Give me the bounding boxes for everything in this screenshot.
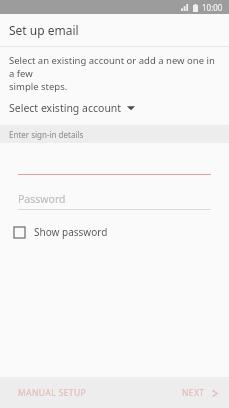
button[interactable]: Password [0,192,229,210]
button[interactable]: Select existing account [0,99,143,117]
staticText: Set up email [9,22,79,38]
button[interactable]: Show password [0,221,120,243]
button[interactable]: NEXT [170,379,229,407]
staticText: NEXT [182,387,205,399]
button[interactable]: MANUAL SETUP [0,379,99,407]
staticText: 10:00 [202,2,223,13]
staticText: Password [18,192,66,206]
staticText: Select existing account [9,101,122,115]
button[interactable] [0,160,229,175]
other: Next [212,389,218,398]
staticText: MANUAL SETUP [18,387,87,399]
staticText: Enter sign-in details [9,129,84,140]
staticText: Show password [34,225,108,239]
staticText: Select an existing account or add a new … [9,54,221,93]
